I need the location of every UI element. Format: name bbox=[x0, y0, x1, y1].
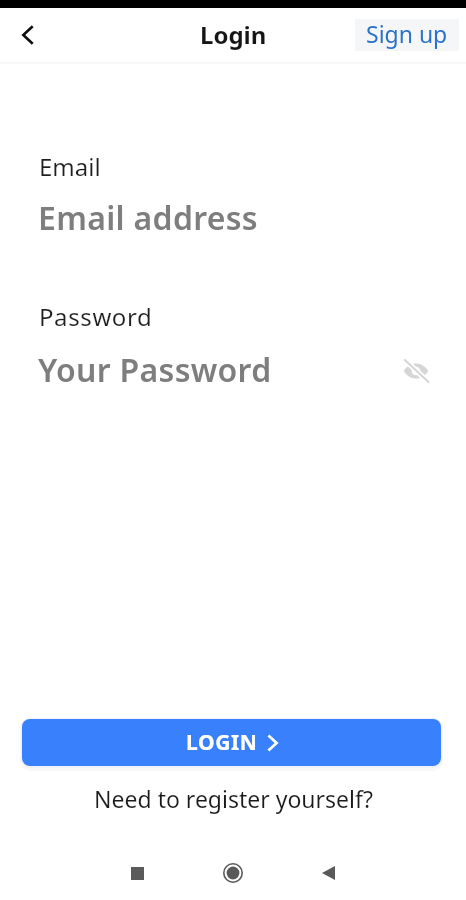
staticText: Password bbox=[39, 300, 153, 333]
button[interactable]: Back bbox=[298, 850, 358, 896]
button[interactable]: Need to register yourself? bbox=[0, 783, 466, 814]
button[interactable]: LOGIN bbox=[22, 719, 441, 766]
staticText: Login bbox=[200, 18, 267, 51]
staticText: Sign up bbox=[366, 18, 448, 49]
staticText: Email address bbox=[38, 196, 258, 240]
staticText: Need to register yourself? bbox=[94, 783, 373, 814]
staticText: Email bbox=[39, 150, 101, 183]
button[interactable]: Recent apps bbox=[107, 850, 167, 896]
staticText: LOGIN bbox=[186, 728, 258, 757]
button[interactable]: Show password bbox=[398, 353, 434, 389]
button[interactable]: Home bbox=[203, 850, 263, 896]
staticText: Your Password bbox=[38, 348, 272, 392]
button[interactable]: Sign up bbox=[355, 19, 459, 51]
button[interactable]: Back bbox=[5, 12, 51, 58]
